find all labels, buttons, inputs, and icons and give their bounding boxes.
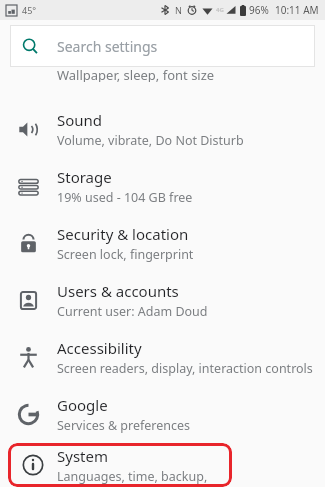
- staticText: Languages, time, backup, updates: [57, 468, 232, 485]
- staticText: System: [57, 446, 108, 466]
- staticText: Accessibility: [57, 338, 142, 358]
- staticText: Wallpaper, sleep, font size: [57, 66, 215, 82]
- button[interactable]: Google: [0, 386, 325, 443]
- staticText: Google: [57, 395, 108, 415]
- button[interactable]: Accessibility: [0, 329, 325, 386]
- button[interactable]: Sound: [0, 101, 325, 158]
- staticText: Screen readers, display, interaction con…: [57, 360, 313, 377]
- staticText: Users & accounts: [57, 281, 179, 301]
- staticText: Security & location: [57, 224, 189, 244]
- button[interactable]: System: [8, 443, 232, 487]
- staticText: 96%: [249, 3, 269, 17]
- staticText: 4G: [216, 6, 224, 14]
- staticText: 45°: [22, 4, 37, 16]
- staticText: Screen lock, fingerprint: [57, 246, 194, 263]
- staticText: N: [175, 4, 182, 16]
- staticText: Services & preferences: [57, 417, 191, 434]
- staticText: Storage: [57, 167, 112, 187]
- staticText: Current user: Adam Doud: [57, 303, 208, 320]
- button[interactable]: Users & accounts: [0, 272, 325, 329]
- staticText: 19% used - 104 GB free: [57, 189, 193, 206]
- staticText: Sound: [57, 110, 103, 130]
- button[interactable]: Storage: [0, 158, 325, 215]
- staticText: 10:11 AM: [275, 3, 319, 17]
- button[interactable]: Search settings: [10, 25, 315, 67]
- staticText: Volume, vibrate, Do Not Disturb: [57, 132, 244, 149]
- button[interactable]: Security & location: [0, 215, 325, 272]
- staticText: Search settings: [57, 37, 158, 56]
